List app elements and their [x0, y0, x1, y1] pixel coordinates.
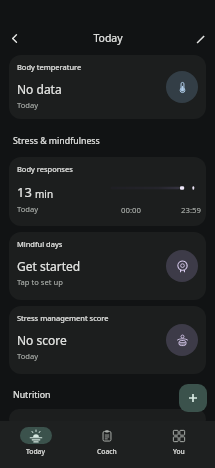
staticText: No score: [17, 332, 67, 348]
button[interactable]: Stress management score: [9, 306, 206, 374]
button[interactable]: Edit: [186, 24, 214, 52]
staticText: Mindful days: [17, 239, 63, 249]
staticText: Nutrition: [13, 389, 51, 401]
button[interactable]: Mindful days: [9, 232, 206, 300]
button[interactable]: Today: [0, 421, 71, 468]
staticText: 00:00: [121, 205, 141, 216]
staticText: Body responses: [17, 164, 73, 174]
staticText: Today: [17, 351, 39, 361]
staticText: No data: [17, 81, 62, 97]
button[interactable]: You: [143, 421, 215, 468]
staticText: Stress & mindfulness: [13, 135, 100, 147]
button[interactable]: Back: [0, 24, 28, 52]
staticText: Stress management score: [17, 313, 109, 323]
button[interactable]: Coach: [71, 421, 143, 468]
button[interactable]: Body temperature: [9, 55, 206, 119]
staticText: Tap to set up: [17, 277, 63, 287]
staticText: Today: [93, 31, 123, 45]
staticText: Body temperature: [17, 62, 82, 72]
staticText: Today: [17, 204, 39, 214]
staticText: min: [35, 187, 54, 201]
staticText: Coach: [97, 447, 117, 456]
staticText: 13: [17, 183, 32, 201]
staticText: Get started: [17, 258, 81, 274]
button[interactable]: Add: [179, 384, 207, 412]
staticText: 23:59: [181, 205, 201, 216]
staticText: Today: [17, 100, 39, 110]
button[interactable]: Body responses: [9, 157, 206, 226]
staticText: Today: [26, 447, 45, 456]
staticText: You: [173, 447, 185, 456]
